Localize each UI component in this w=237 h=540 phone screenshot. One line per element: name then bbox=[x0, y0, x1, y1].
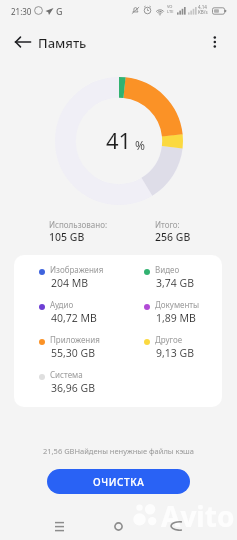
staticText: 1,89 MB bbox=[156, 311, 196, 325]
button[interactable]: Другое bbox=[144, 336, 222, 368]
staticText: 55,30 GB bbox=[51, 346, 96, 360]
button[interactable]: Back bbox=[11, 30, 35, 54]
button[interactable]: More options bbox=[203, 30, 227, 54]
button[interactable]: Recent apps bbox=[47, 514, 71, 538]
staticText: 36,96 GB bbox=[51, 381, 96, 395]
staticText: Приложения bbox=[50, 334, 100, 345]
staticText: 3,74 GB bbox=[156, 276, 195, 290]
button[interactable]: Back bbox=[163, 514, 187, 538]
staticText: Итого: bbox=[155, 219, 180, 230]
staticText: Видео bbox=[155, 264, 180, 275]
button[interactable]: Приложения bbox=[39, 336, 135, 368]
staticText: Аудио bbox=[50, 299, 74, 310]
staticText: 4,14 KB/s bbox=[198, 4, 208, 15]
staticText: 256 GB bbox=[155, 230, 191, 244]
staticText: 21:30 bbox=[11, 6, 32, 17]
staticText: % bbox=[135, 137, 145, 153]
staticText: VO LTE bbox=[167, 4, 174, 14]
staticText: Изображения bbox=[50, 264, 104, 275]
button[interactable]: Изображения bbox=[39, 266, 135, 298]
staticText: 40,72 MB bbox=[51, 311, 97, 325]
staticText: ОЧИСТКА bbox=[93, 475, 145, 489]
button[interactable]: Home bbox=[106, 514, 130, 538]
staticText: Использовано: bbox=[49, 219, 108, 230]
staticText: 9,13 GB bbox=[156, 346, 195, 360]
button[interactable]: Система bbox=[39, 371, 135, 403]
staticText: 204 MB bbox=[51, 276, 89, 290]
staticText: Система bbox=[50, 369, 83, 380]
staticText: G bbox=[56, 5, 63, 17]
button[interactable]: Аудио bbox=[39, 301, 135, 333]
staticText: Память bbox=[38, 34, 87, 52]
staticText: Документы bbox=[155, 299, 200, 310]
staticText: Другое bbox=[155, 334, 183, 345]
staticText: Avito bbox=[161, 497, 235, 535]
staticText: 41 bbox=[106, 125, 132, 155]
button[interactable]: Видео bbox=[144, 266, 222, 298]
button[interactable]: ОЧИСТКА bbox=[47, 469, 190, 494]
staticText: 21,56 GBНайдены ненужные файлы кэша bbox=[43, 446, 194, 456]
button[interactable]: Документы bbox=[144, 301, 222, 333]
staticText: 105 GB bbox=[49, 230, 85, 244]
